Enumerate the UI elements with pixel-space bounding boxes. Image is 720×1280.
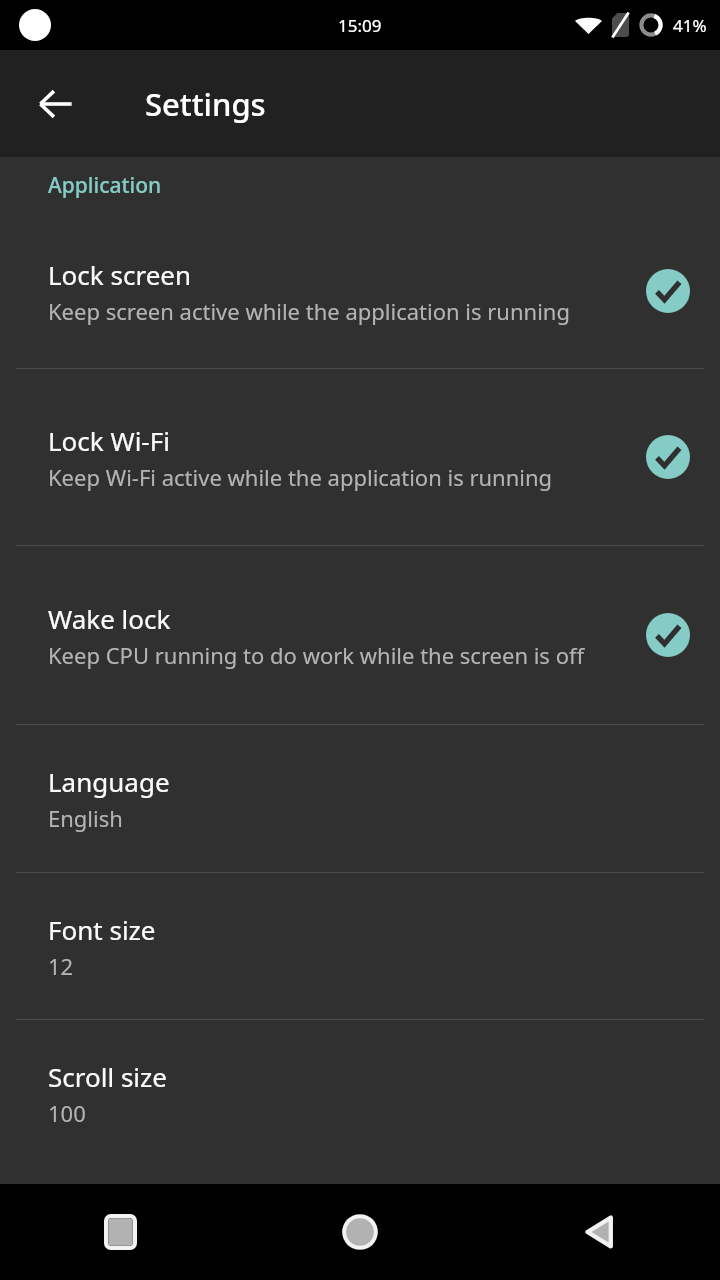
button[interactable]: Language bbox=[0, 725, 720, 872]
staticText: Keep CPU running to do work while the sc… bbox=[48, 640, 585, 670]
staticText: Keep screen active while the application… bbox=[48, 296, 570, 326]
button[interactable]: Lock screen bbox=[0, 214, 720, 368]
staticText: Scroll size bbox=[48, 1059, 167, 1094]
staticText: English bbox=[48, 803, 123, 833]
button[interactable]: Wake lock bbox=[0, 546, 720, 724]
staticText: Lock Wi-Fi bbox=[48, 423, 170, 458]
staticText: 100 bbox=[48, 1098, 86, 1128]
button[interactable]: Recent apps bbox=[0, 1184, 240, 1280]
staticText: 12 bbox=[48, 951, 74, 981]
button[interactable]: Font size bbox=[0, 873, 720, 1019]
staticText: Settings bbox=[145, 83, 266, 125]
staticText: 15:09 bbox=[338, 14, 382, 37]
staticText: Font size bbox=[48, 912, 156, 947]
button[interactable]: Lock Wi-Fi bbox=[0, 369, 720, 545]
staticText: Keep Wi-Fi active while the application … bbox=[48, 462, 553, 492]
button[interactable]: Back bbox=[480, 1184, 720, 1280]
staticText: Wake lock bbox=[48, 601, 171, 636]
button[interactable]: Home bbox=[240, 1184, 480, 1280]
staticText: Language bbox=[48, 764, 170, 799]
button[interactable]: Scroll size bbox=[0, 1020, 720, 1167]
staticText: Lock screen bbox=[48, 257, 192, 292]
staticText: 41% bbox=[673, 14, 707, 37]
button[interactable]: Back bbox=[24, 72, 88, 136]
staticText: Application bbox=[48, 171, 162, 200]
